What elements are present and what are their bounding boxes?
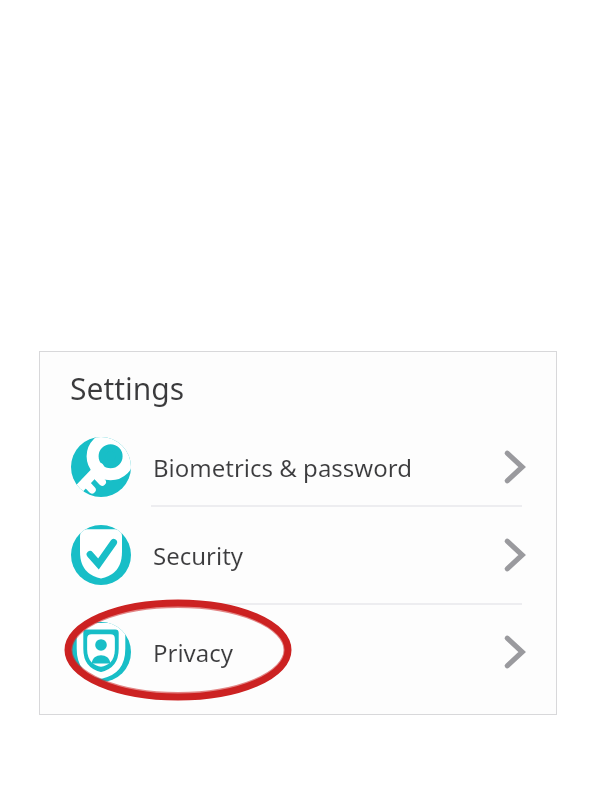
staticText: Biometrics & password <box>153 451 412 484</box>
button[interactable]: Privacy <box>40 605 556 699</box>
other: Open Biometrics & password <box>500 452 530 482</box>
other: Open Privacy <box>500 637 530 667</box>
other: Open Security <box>500 540 530 570</box>
button[interactable]: Biometrics & password <box>40 429 556 505</box>
staticText: Settings <box>70 368 185 409</box>
staticText: Security <box>153 539 244 572</box>
button[interactable]: Security <box>40 507 556 603</box>
staticText: Privacy <box>153 636 234 669</box>
